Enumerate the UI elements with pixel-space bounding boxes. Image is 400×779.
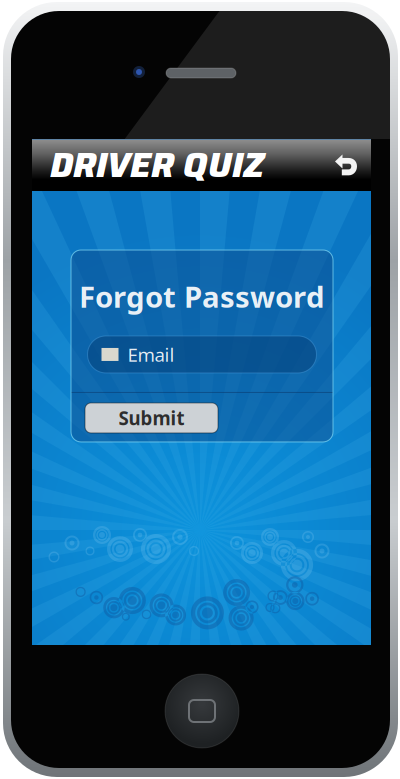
button[interactable]: Submit	[85, 403, 218, 433]
staticText: Email	[127, 342, 174, 367]
button[interactable]: Back	[329, 148, 363, 182]
staticText: Submit	[118, 406, 184, 430]
staticText: Forgot Password	[79, 277, 325, 316]
staticText: DRIVER QUIZ	[50, 138, 265, 192]
